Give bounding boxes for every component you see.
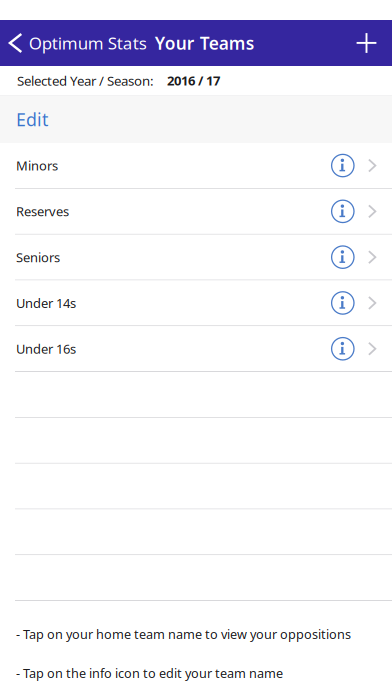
staticText: Your Teams [155, 31, 255, 55]
staticText: - Tap on your home team name to view you… [16, 625, 351, 643]
button[interactable]: Add team [341, 20, 392, 66]
staticText: Under 16s [16, 340, 76, 357]
staticText: Optimum Stats [29, 31, 147, 55]
button[interactable]: Reserves [0, 189, 331, 234]
staticText: Seniors [16, 248, 60, 266]
staticText: 2016 / 17 [167, 72, 220, 89]
button[interactable]: Under 16s [0, 326, 331, 371]
button[interactable]: Seniors [0, 235, 331, 280]
staticText: - Tap on the info icon to edit your team… [16, 664, 283, 682]
button[interactable]: Edit Reserves team name [331, 200, 354, 223]
button[interactable]: Under 14s [0, 280, 331, 325]
staticText: Selected Year / Season: [17, 71, 154, 90]
staticText: Minors [16, 157, 58, 174]
staticText: Under 14s [16, 294, 76, 312]
button[interactable]: Edit Minors team name [331, 154, 354, 177]
button[interactable]: Minors [0, 143, 331, 188]
staticText: Reserves [16, 202, 69, 220]
button[interactable]: Edit Under 14s team name [331, 291, 354, 314]
button[interactable]: Edit [0, 96, 58, 143]
button[interactable]: Optimum Stats [0, 20, 147, 66]
button[interactable]: Edit Under 16s team name [331, 337, 354, 360]
button[interactable]: Edit Seniors team name [331, 246, 354, 269]
staticText: Edit [16, 107, 48, 131]
